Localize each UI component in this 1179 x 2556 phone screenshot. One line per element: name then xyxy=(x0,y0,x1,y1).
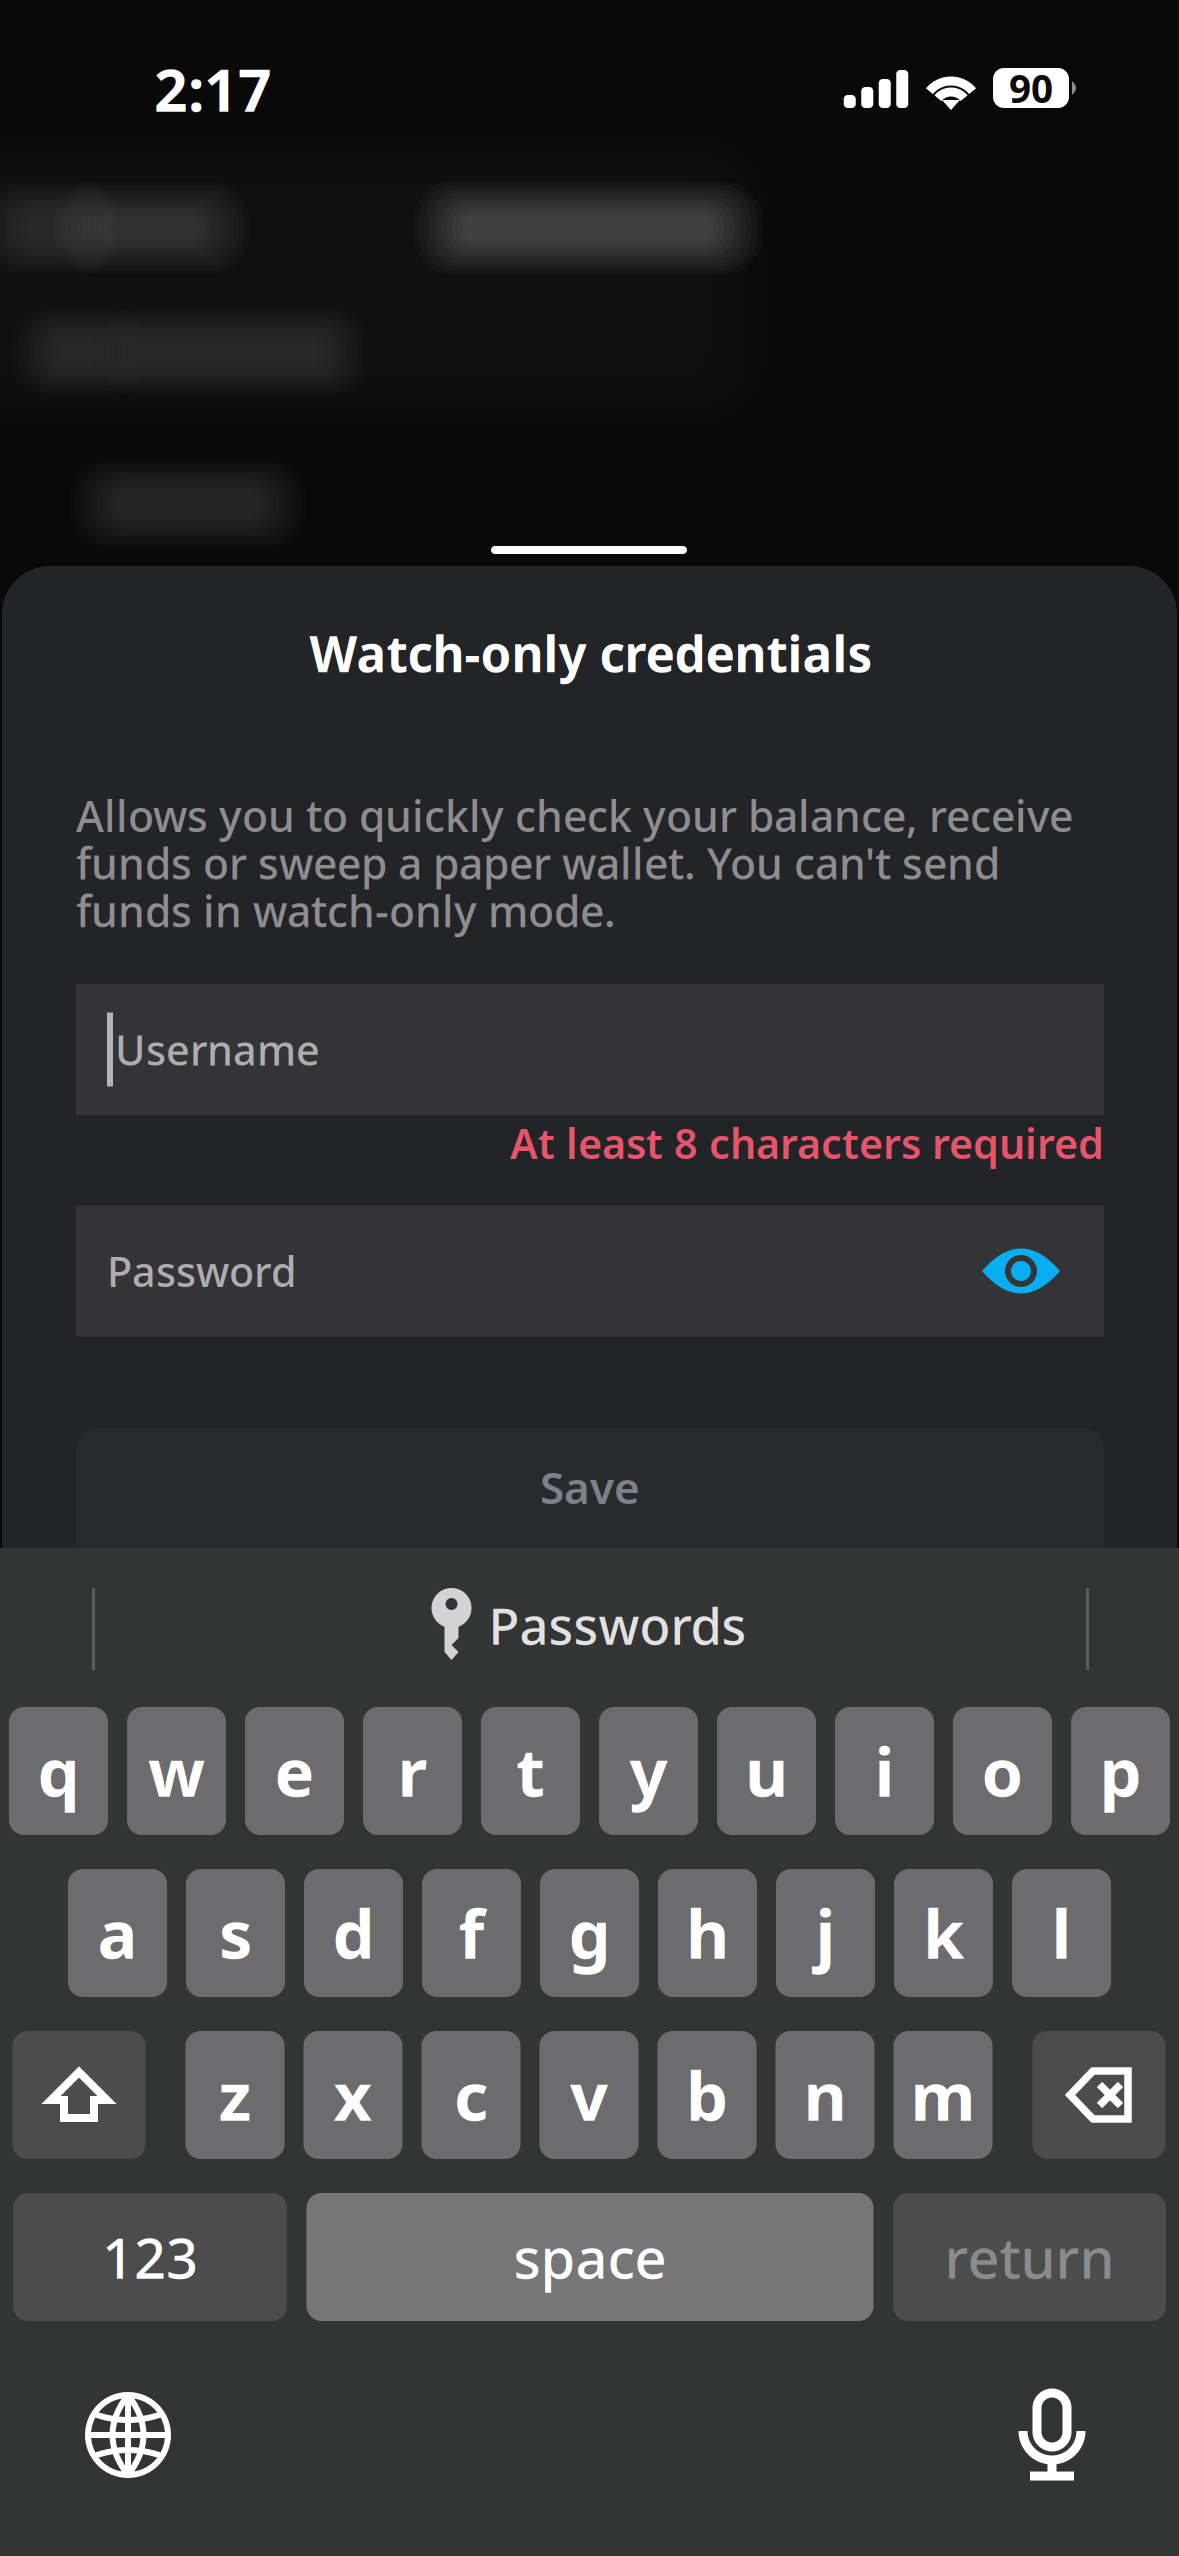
button[interactable]: l xyxy=(1012,1869,1111,1997)
button[interactable]: d xyxy=(304,1869,403,1997)
staticText: w xyxy=(148,1727,205,1815)
button[interactable]: Username xyxy=(76,984,1104,1115)
staticText: u xyxy=(745,1727,788,1815)
staticText: 123 xyxy=(102,2220,198,2294)
staticText: x xyxy=(333,2051,372,2139)
button[interactable]: Password xyxy=(76,1205,1104,1336)
button[interactable]: x xyxy=(303,2031,402,2159)
staticText: j xyxy=(815,1889,835,1977)
button[interactable]: q xyxy=(9,1707,108,1835)
staticText: s xyxy=(219,1889,252,1977)
staticText: Watch-only credentials xyxy=(309,620,872,686)
button[interactable]: z xyxy=(185,2031,284,2159)
button[interactable]: b xyxy=(657,2031,756,2159)
staticText: n xyxy=(803,2051,846,2139)
button[interactable]: v xyxy=(539,2031,638,2159)
staticText: p xyxy=(1099,1727,1141,1815)
staticText: t xyxy=(516,1727,545,1815)
button[interactable]: space xyxy=(306,2193,873,2321)
staticText: r xyxy=(397,1727,427,1815)
staticText: o xyxy=(981,1727,1023,1815)
staticText: Passwords xyxy=(488,1591,746,1659)
staticText: z xyxy=(218,2051,251,2139)
button[interactable]: Next keyboard xyxy=(85,2392,171,2478)
staticText: q xyxy=(37,1727,79,1815)
button[interactable]: Save xyxy=(76,1428,1104,1582)
button[interactable]: t xyxy=(481,1707,580,1835)
staticText: e xyxy=(274,1727,314,1815)
button[interactable]: return xyxy=(893,2193,1166,2321)
staticText: k xyxy=(923,1889,964,1977)
button[interactable]: i xyxy=(835,1707,934,1835)
staticText: At least 8 characters required xyxy=(510,1116,1104,1170)
staticText: h xyxy=(686,1889,729,1977)
button[interactable]: f xyxy=(422,1869,521,1997)
staticText: Allows you to quickly check your balance… xyxy=(76,787,1073,939)
button[interactable]: Dictate xyxy=(1016,2386,1088,2484)
button[interactable]: Delete xyxy=(1032,2031,1165,2159)
button[interactable]: w xyxy=(127,1707,226,1835)
button[interactable]: o xyxy=(953,1707,1052,1835)
button[interactable]: a xyxy=(68,1869,167,1997)
button[interactable]: Passwords xyxy=(431,1588,746,1662)
staticText: Username xyxy=(115,1022,320,1077)
button[interactable]: 123 xyxy=(13,2193,287,2321)
staticText: Save xyxy=(540,1458,640,1516)
button[interactable]: j xyxy=(776,1869,875,1997)
button[interactable]: m xyxy=(893,2031,992,2159)
button[interactable]: g xyxy=(540,1869,639,1997)
staticText: b xyxy=(686,2051,728,2139)
button[interactable]: p xyxy=(1071,1707,1170,1835)
button[interactable]: h xyxy=(658,1869,757,1997)
staticText: 90 xyxy=(1009,62,1053,114)
button[interactable]: Shift xyxy=(12,2031,145,2159)
staticText: space xyxy=(513,2220,666,2294)
button[interactable]: c xyxy=(421,2031,520,2159)
staticText: a xyxy=(97,1889,137,1977)
staticText: y xyxy=(629,1727,667,1815)
staticText: 2:17 xyxy=(154,50,272,128)
staticText: return xyxy=(944,2220,1114,2294)
staticText: i xyxy=(874,1727,894,1815)
button[interactable]: e xyxy=(245,1707,344,1835)
staticText: g xyxy=(568,1889,610,1977)
staticText: Password xyxy=(107,1244,297,1298)
staticText: c xyxy=(454,2051,488,2139)
staticText: f xyxy=(458,1889,484,1977)
staticText: m xyxy=(910,2051,975,2139)
staticText: d xyxy=(332,1889,374,1977)
button[interactable]: y xyxy=(599,1707,698,1835)
staticText: l xyxy=(1051,1889,1071,1977)
button[interactable]: r xyxy=(363,1707,462,1835)
button[interactable]: u xyxy=(717,1707,816,1835)
button[interactable]: s xyxy=(186,1869,285,1997)
staticText: v xyxy=(570,2051,608,2139)
button[interactable]: k xyxy=(894,1869,993,1997)
button[interactable]: n xyxy=(775,2031,874,2159)
